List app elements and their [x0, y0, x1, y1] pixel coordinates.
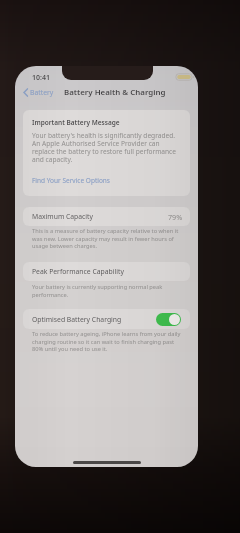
other: Battery [176, 73, 195, 81]
staticText: Optimised Battery Charging [32, 315, 122, 324]
staticText: Maximum Capacity [32, 212, 94, 221]
button[interactable]: Optimised Battery Charging [23, 309, 190, 329]
staticText: Peak Performance Capability [32, 267, 124, 276]
staticText: Your battery is currently supporting nor… [32, 283, 184, 298]
staticText: To reduce battery ageing, iPhone learns … [32, 330, 184, 352]
staticText: Your battery's health is significantly d… [32, 131, 183, 164]
staticText: 79% [168, 212, 183, 222]
button[interactable]: Find Your Service Options [32, 176, 110, 185]
staticText: Battery Health & Charging [64, 87, 166, 98]
button[interactable]: Peak Performance Capability [23, 262, 190, 281]
staticText: 10:41 [32, 73, 50, 83]
button[interactable]: Battery [15, 85, 58, 100]
button[interactable]: Maximum Capacity [23, 207, 190, 226]
staticText: Important Battery Message [32, 118, 120, 127]
staticText: Battery [30, 88, 54, 97]
staticText: This is a measure of battery capacity re… [32, 227, 184, 249]
